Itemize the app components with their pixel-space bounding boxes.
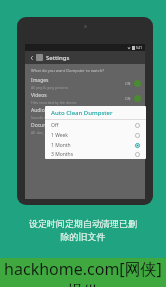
staticText: 1 Month bbox=[51, 142, 135, 149]
staticText: Sounds saved by the device bbox=[31, 115, 77, 120]
staticText: Documents bbox=[31, 122, 58, 129]
staticText: 1 Week bbox=[51, 132, 135, 139]
staticText: Off bbox=[51, 122, 135, 129]
staticText: Files recorded by the device bbox=[31, 100, 77, 105]
button[interactable]: Off bbox=[45, 120, 146, 130]
button[interactable]: Toggle Videos bbox=[134, 95, 141, 102]
staticText: hackhome.com[网侠]提供 bbox=[0, 258, 166, 287]
button[interactable]: Toggle Images bbox=[134, 80, 141, 87]
staticText: Videos bbox=[31, 92, 47, 99]
staticText: All .doc, .pdf & .txt files bbox=[31, 130, 69, 135]
button[interactable]: 1 Month bbox=[45, 140, 146, 150]
staticText: Auto Clean Dumpster bbox=[51, 109, 113, 117]
button[interactable]: Images bbox=[25, 76, 145, 91]
staticText: Images bbox=[31, 77, 49, 84]
staticText: 5:21 bbox=[136, 46, 142, 50]
button[interactable]: Toggle Documents bbox=[134, 125, 141, 132]
button[interactable]: Back bbox=[28, 54, 36, 62]
staticText: 设定时间定期自动清理已删 除的旧文件 bbox=[29, 218, 137, 242]
staticText: What do you want Dumpster to watch? bbox=[31, 68, 104, 73]
button[interactable]: 3 Months bbox=[45, 150, 146, 159]
staticText: ON bbox=[125, 96, 131, 101]
staticText: Settings bbox=[46, 54, 70, 62]
staticText: Audio bbox=[31, 107, 45, 114]
staticText: All png & jpeg pictures bbox=[31, 85, 69, 90]
button[interactable]: Videos bbox=[25, 91, 145, 106]
button[interactable]: 1 Week bbox=[45, 130, 146, 140]
button[interactable]: Audio bbox=[25, 106, 145, 121]
button[interactable]: Documents bbox=[25, 121, 145, 136]
staticText: 3 Months bbox=[51, 151, 135, 158]
staticText: ON bbox=[125, 81, 131, 86]
